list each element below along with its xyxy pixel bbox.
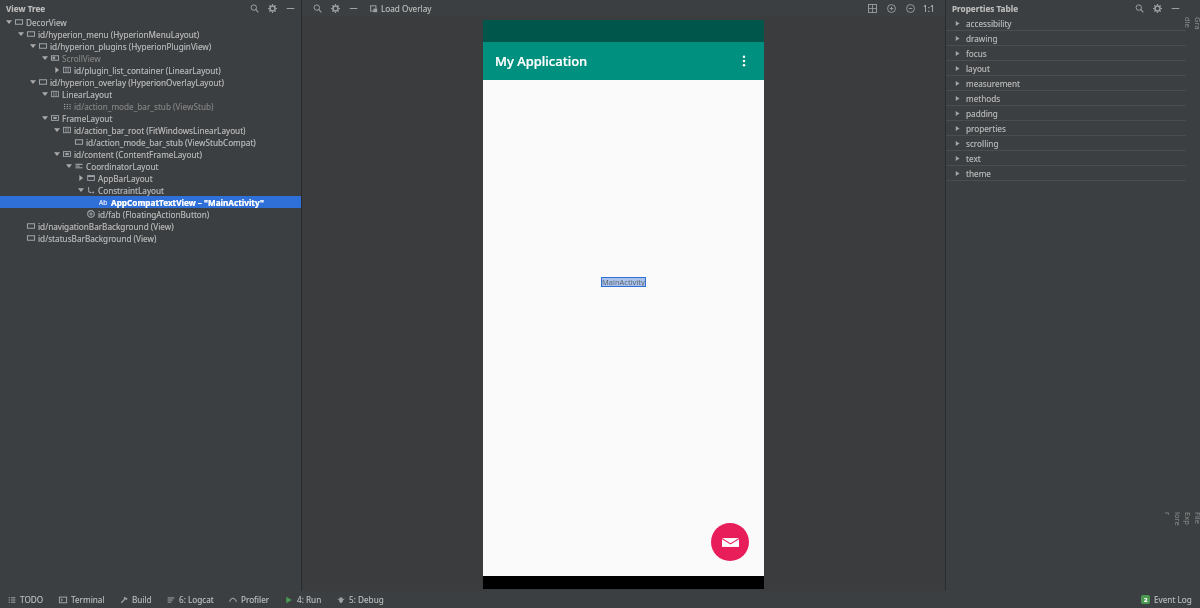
button[interactable]: id/fab (FloatingActionButton) — [0, 208, 301, 220]
button[interactable]: methods — [946, 91, 1186, 105]
staticText: ScrollView — [62, 53, 101, 64]
button[interactable]: properties — [946, 121, 1186, 135]
staticText: id/plugin_list_container (LinearLayout) — [74, 65, 221, 76]
staticText: ConstraintLayout — [98, 185, 165, 196]
button[interactable]: Search — [249, 3, 260, 14]
button[interactable]: TODO — [8, 594, 44, 605]
staticText: theme — [966, 168, 991, 179]
staticText: My Application — [495, 52, 588, 70]
button[interactable]: id/action_mode_bar_stub (ViewStub) — [0, 100, 301, 112]
staticText: id/action_mode_bar_stub (ViewStub) — [74, 101, 214, 112]
button[interactable]: Build — [120, 594, 152, 605]
button[interactable]: scrolling — [946, 136, 1186, 150]
button[interactable]: Minimize — [1170, 3, 1181, 14]
staticText: Gradle — [1183, 17, 1200, 31]
staticText: properties — [966, 123, 1006, 134]
staticText: LinearLayout — [62, 89, 113, 100]
button[interactable]: Settings — [1152, 3, 1163, 14]
button[interactable]: id/action_mode_bar_stub (ViewStubCompat) — [0, 136, 301, 148]
button[interactable]: AppBarLayout — [0, 172, 301, 184]
staticText: View Tree — [6, 3, 46, 14]
staticText: Profiler — [241, 594, 270, 605]
staticText: id/hyperion_menu (HyperionMenuLayout) — [38, 29, 200, 40]
button[interactable]: Profiler — [229, 594, 270, 605]
staticText: TODO — [20, 594, 44, 605]
staticText: drawing — [966, 33, 998, 44]
button[interactable]: id/hyperion_menu (HyperionMenuLayout) — [0, 28, 301, 40]
button[interactable]: Settings — [330, 3, 341, 14]
button[interactable]: id/plugin_list_container (LinearLayout) — [0, 64, 301, 76]
button[interactable]: id/hyperion_overlay (HyperionOverlayLayo… — [0, 76, 301, 88]
staticText: id/content (ContentFrameLayout) — [74, 149, 202, 160]
button[interactable]: DecorView — [0, 16, 301, 28]
staticText: MainActivity — [602, 277, 645, 287]
button[interactable]: Gradle — [1183, 17, 1200, 31]
button[interactable]: Settings — [267, 3, 278, 14]
staticText: padding — [966, 108, 998, 119]
button[interactable]: padding — [946, 106, 1186, 120]
staticText: id/fab (FloatingActionButton) — [98, 209, 210, 220]
staticText: Load Overlay — [381, 3, 432, 14]
button[interactable]: id/hyperion_plugins (HyperionPluginView) — [0, 40, 301, 52]
button[interactable]: LinearLayout — [0, 88, 301, 100]
staticText: Ab — [99, 198, 108, 207]
button[interactable]: ScrollView — [0, 52, 301, 64]
staticText: id/statusBarBackground (View) — [38, 233, 157, 244]
button[interactable]: id/content (ContentFrameLayout) — [0, 148, 301, 160]
staticText: text — [966, 153, 981, 164]
staticText: id/action_bar_root (FitWindowsLinearLayo… — [74, 125, 246, 136]
button[interactable]: Ab — [0, 196, 301, 208]
button[interactable]: Compose email — [711, 523, 749, 561]
button[interactable]: Grid — [867, 3, 878, 14]
staticText: id/action_mode_bar_stub (ViewStubCompat) — [86, 137, 256, 148]
button[interactable]: 6: Logcat — [167, 594, 214, 605]
staticText: CoordinatorLayout — [86, 161, 159, 172]
staticText: focus — [966, 48, 987, 59]
staticText: Terminal — [71, 594, 105, 605]
staticText: scrolling — [966, 138, 999, 149]
button[interactable]: Search — [1134, 3, 1145, 14]
button[interactable]: Terminal — [59, 594, 105, 605]
staticText: Event Log — [1154, 594, 1192, 605]
button[interactable]: 4: Run — [285, 594, 322, 605]
staticText: DecorView — [26, 17, 67, 28]
button[interactable]: drawing — [946, 31, 1186, 45]
staticText: AppBarLayout — [98, 173, 153, 184]
staticText: 6: Logcat — [179, 594, 214, 605]
button[interactable]: Zoom in — [886, 3, 897, 14]
staticText: 1:1 — [923, 3, 935, 14]
staticText: id/hyperion_overlay (HyperionOverlayLayo… — [50, 77, 224, 88]
staticText: Properties Table — [952, 3, 1019, 14]
staticText: 2 — [1144, 596, 1148, 604]
button[interactable]: 5: Debug — [337, 594, 384, 605]
staticText: AppCompatTextView – "MainActivity" — [111, 197, 264, 208]
button[interactable]: FrameLayout — [0, 112, 301, 124]
staticText: id/navigationBarBackground (View) — [38, 221, 174, 232]
button[interactable]: More options — [730, 47, 758, 75]
button[interactable]: ConstraintLayout — [0, 184, 301, 196]
button[interactable]: 2 — [1141, 594, 1192, 605]
staticText: measurement — [966, 78, 1020, 89]
button[interactable]: layout — [946, 61, 1186, 75]
button[interactable]: theme — [946, 166, 1186, 180]
button[interactable]: focus — [946, 46, 1186, 60]
staticText: accessibility — [966, 18, 1012, 29]
staticText: Build — [132, 594, 152, 605]
button[interactable]: id/action_bar_root (FitWindowsLinearLayo… — [0, 124, 301, 136]
button[interactable]: Device File Explorer — [1163, 512, 1200, 526]
button[interactable]: accessibility — [946, 16, 1186, 30]
button[interactable]: CoordinatorLayout — [0, 160, 301, 172]
button[interactable]: measurement — [946, 76, 1186, 90]
button[interactable]: Minimize — [285, 3, 296, 14]
button[interactable]: Load Overlay — [370, 3, 432, 14]
button[interactable]: Search — [312, 3, 323, 14]
staticText: id/hyperion_plugins (HyperionPluginView) — [50, 41, 212, 52]
staticText: Device File Explorer — [1163, 512, 1200, 526]
button[interactable]: id/statusBarBackground (View) — [0, 232, 301, 244]
button[interactable]: Minimize — [348, 3, 359, 14]
button[interactable]: text — [946, 151, 1186, 165]
staticText: 4: Run — [297, 594, 322, 605]
button[interactable]: Zoom out — [905, 3, 916, 14]
staticText: methods — [966, 93, 1001, 104]
button[interactable]: id/navigationBarBackground (View) — [0, 220, 301, 232]
